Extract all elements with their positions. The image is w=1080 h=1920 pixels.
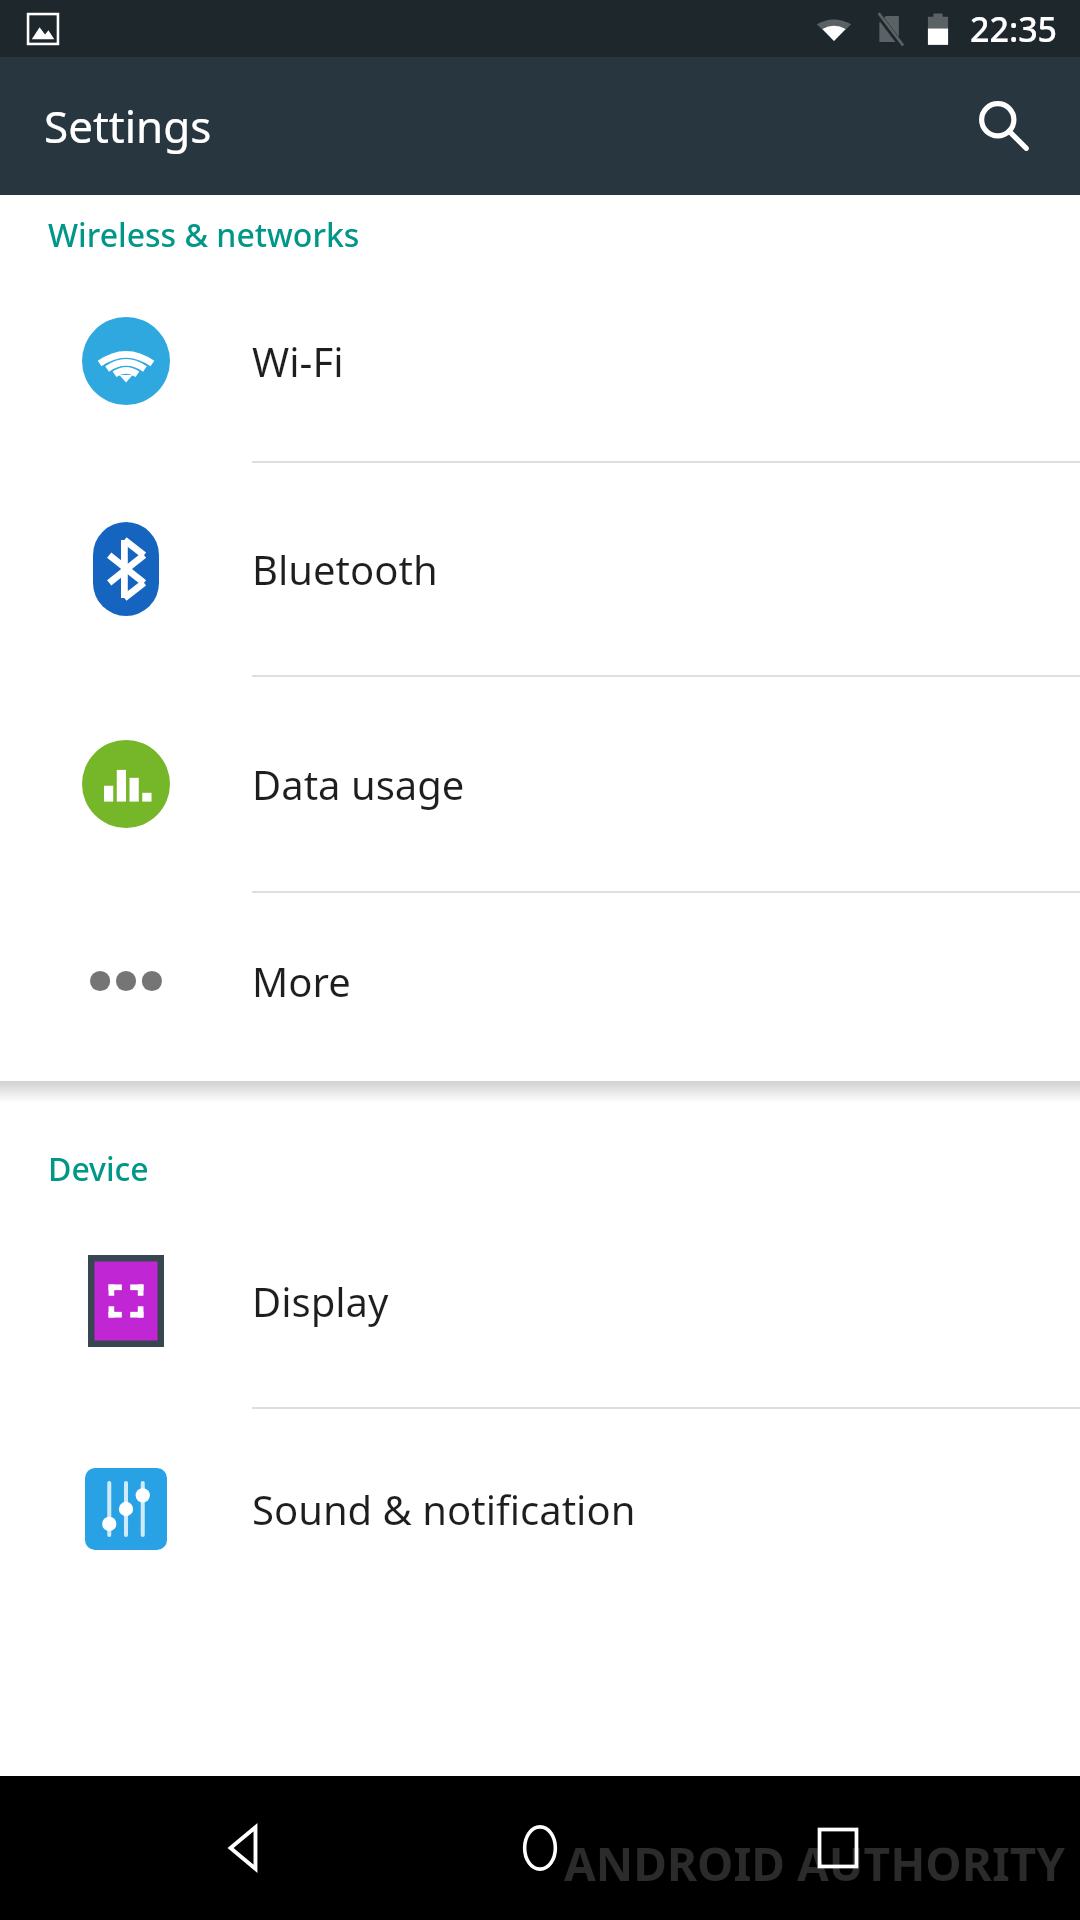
staticText: Data usage [252, 757, 465, 811]
staticText: ANDROID AUTHORITY [564, 1832, 1066, 1895]
button[interactable]: Sound & notification [0, 1409, 1080, 1609]
staticText: Settings [44, 96, 212, 156]
button[interactable]: Data usage [0, 677, 1080, 891]
button[interactable]: Search [954, 76, 1054, 176]
staticText: 22:35 [970, 6, 1058, 52]
button[interactable]: More [0, 893, 1080, 1069]
staticText: Sound & notification [252, 1482, 636, 1536]
staticText: Wi-Fi [252, 334, 344, 388]
staticText: Device [48, 1147, 149, 1191]
button[interactable]: Home [485, 1793, 595, 1903]
button[interactable]: Display [0, 1195, 1080, 1407]
staticText: Wireless & networks [48, 213, 360, 257]
staticText: More [252, 954, 351, 1008]
button[interactable]: Back [188, 1793, 298, 1903]
button[interactable]: Wi-Fi [0, 261, 1080, 461]
button[interactable]: Bluetooth [0, 463, 1080, 675]
staticText: Bluetooth [252, 542, 438, 596]
staticText: Display [252, 1274, 389, 1328]
button[interactable]: Recent apps [783, 1793, 893, 1903]
